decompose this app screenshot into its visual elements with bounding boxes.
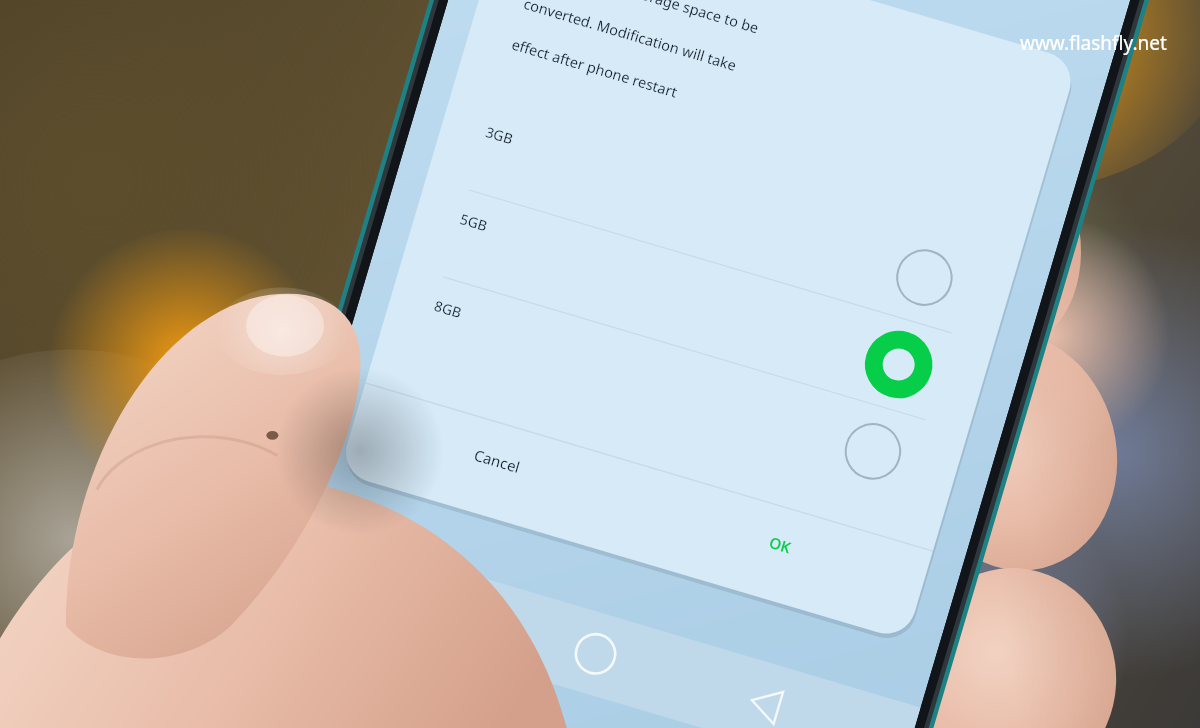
button[interactable]: OK [770,528,844,574]
button[interactable]: Back [806,600,866,656]
button[interactable]: 8GB option [812,422,866,470]
button[interactable]: MemFusion toggle on [648,0,720,52]
button[interactable]: Home [700,640,760,696]
button[interactable]: Recents [580,680,640,728]
button[interactable]: Cancel [548,598,660,646]
other: Phone in hand showing Set virtual RAM di… [0,0,1200,728]
